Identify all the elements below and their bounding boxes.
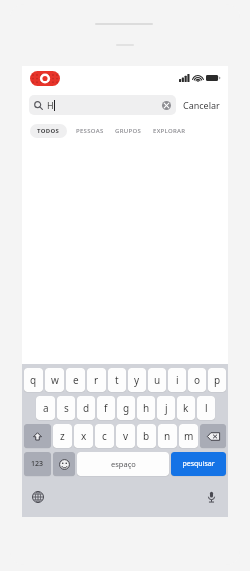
button[interactable]: Backspace <box>200 424 226 448</box>
staticText: v <box>123 429 129 443</box>
staticText: d <box>83 401 90 415</box>
button[interactable]: Cancelar <box>182 96 221 114</box>
button[interactable]: a <box>36 396 55 420</box>
staticText: TODOS <box>37 127 60 135</box>
button[interactable]: l <box>197 396 215 420</box>
button[interactable]: q <box>24 368 43 392</box>
button[interactable]: espaço <box>77 452 169 476</box>
staticText: i <box>176 373 179 387</box>
button[interactable]: z <box>53 424 72 448</box>
staticText: h <box>143 401 150 415</box>
button[interactable]: g <box>117 396 135 420</box>
button[interactable]: Clear <box>162 101 171 110</box>
button[interactable]: u <box>148 368 166 392</box>
staticText: c <box>102 429 107 443</box>
staticText: s <box>64 401 69 415</box>
staticText: EXPLORAR <box>153 127 186 135</box>
staticText: p <box>214 373 221 387</box>
button[interactable]: Change keyboard language <box>31 490 45 504</box>
button[interactable]: n <box>158 424 177 448</box>
button[interactable]: EXPLORAR <box>152 124 187 138</box>
button[interactable]: d <box>77 396 95 420</box>
staticText: Cancelar <box>183 99 220 111</box>
other: Recording <box>30 71 60 86</box>
button[interactable]: m <box>179 424 198 448</box>
button[interactable]: x <box>74 424 93 448</box>
staticText: l <box>205 401 208 415</box>
staticText: H <box>47 99 54 111</box>
staticText: y <box>134 373 140 387</box>
button[interactable]: H <box>29 95 176 115</box>
button[interactable]: 123 <box>24 452 51 476</box>
button[interactable]: p <box>208 368 226 392</box>
staticText: b <box>143 429 150 443</box>
button[interactable]: o <box>188 368 206 392</box>
staticText: PESSOAS <box>76 127 104 135</box>
button[interactable]: GRUPOS <box>114 124 143 138</box>
button[interactable]: e <box>66 368 85 392</box>
staticText: g <box>123 401 130 415</box>
button[interactable]: c <box>95 424 114 448</box>
button[interactable]: s <box>57 396 75 420</box>
button[interactable]: j <box>157 396 175 420</box>
button[interactable]: pesquisar <box>171 452 226 476</box>
staticText: e <box>73 373 79 387</box>
staticText: r <box>94 373 99 387</box>
staticText: z <box>60 429 65 443</box>
staticText: espaço <box>111 459 136 469</box>
staticText: j <box>165 401 168 415</box>
button[interactable]: b <box>137 424 156 448</box>
staticText: q <box>30 373 37 387</box>
button[interactable]: Voice input <box>204 490 218 504</box>
staticText: pesquisar <box>182 459 215 469</box>
button[interactable]: w <box>45 368 64 392</box>
staticText: k <box>183 401 189 415</box>
staticText: t <box>115 373 119 387</box>
button[interactable]: i <box>168 368 186 392</box>
button[interactable]: t <box>108 368 126 392</box>
staticText: u <box>154 373 161 387</box>
staticText: o <box>194 373 201 387</box>
staticText: f <box>104 401 108 415</box>
button[interactable]: TODOS <box>30 124 67 138</box>
staticText: m <box>184 429 194 443</box>
button[interactable]: k <box>177 396 195 420</box>
staticText: w <box>51 373 59 387</box>
staticText: a <box>43 401 49 415</box>
button[interactable]: Shift <box>24 424 51 448</box>
button[interactable]: h <box>137 396 155 420</box>
button[interactable]: r <box>87 368 106 392</box>
button[interactable]: Emoji <box>53 452 75 476</box>
staticText: 123 <box>31 459 44 469</box>
staticText: GRUPOS <box>115 127 142 135</box>
button[interactable]: v <box>116 424 135 448</box>
button[interactable]: PESSOAS <box>75 124 105 138</box>
staticText: n <box>164 429 171 443</box>
button[interactable]: y <box>128 368 146 392</box>
staticText: x <box>81 429 87 443</box>
button[interactable]: f <box>97 396 115 420</box>
